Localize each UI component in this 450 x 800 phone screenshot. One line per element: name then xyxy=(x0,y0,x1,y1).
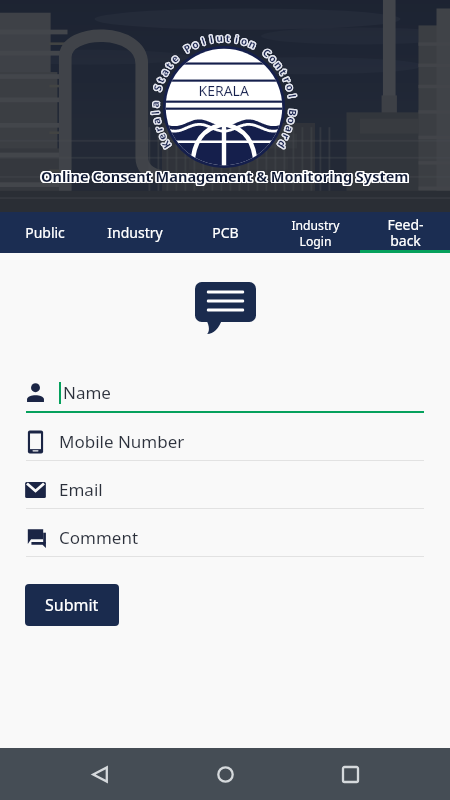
button[interactable]: PCB xyxy=(180,212,270,253)
button[interactable]: Name xyxy=(0,374,450,423)
staticText: Industry Login xyxy=(291,217,340,249)
staticText: Email xyxy=(59,478,103,501)
staticText: PCB xyxy=(212,223,239,242)
button[interactable]: Public xyxy=(0,212,90,253)
button[interactable]: Industry Login xyxy=(270,212,360,253)
button[interactable]: Industry xyxy=(90,212,180,253)
staticText: Mobile Number xyxy=(59,430,185,453)
button[interactable]: Submit xyxy=(25,584,119,626)
button[interactable]: Email xyxy=(0,471,450,519)
button[interactable]: Mobile Number xyxy=(0,423,450,471)
button[interactable]: Feed- back xyxy=(360,212,450,253)
button[interactable]: Back xyxy=(76,750,124,798)
staticText: Submit xyxy=(45,594,99,616)
staticText: Industry xyxy=(107,223,163,242)
button[interactable]: Comment xyxy=(0,519,450,567)
staticText: Public xyxy=(25,223,65,242)
staticText: Feed- back xyxy=(387,215,424,250)
staticText: Name xyxy=(63,381,111,404)
button[interactable]: Recents xyxy=(326,750,374,798)
staticText: Comment xyxy=(59,526,139,549)
button[interactable]: Home xyxy=(201,750,249,798)
